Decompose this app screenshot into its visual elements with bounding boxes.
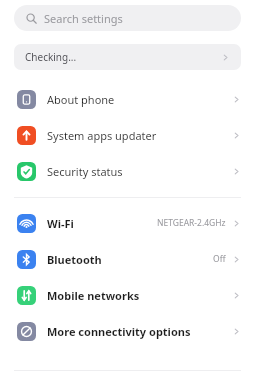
- staticText: More connectivity options: [47, 324, 191, 339]
- staticText: System apps updater: [47, 128, 157, 143]
- staticText: Bluetooth: [47, 252, 102, 267]
- staticText: About phone: [47, 92, 115, 107]
- staticText: Search settings: [44, 11, 123, 26]
- button[interactable]: Search settings: [14, 5, 241, 31]
- button[interactable]: Mobile networks: [0, 277, 255, 313]
- staticText: Mobile networks: [47, 288, 140, 303]
- button[interactable]: Wi-Fi: [0, 205, 255, 241]
- staticText: NETGEAR-2.4GHz: [157, 217, 226, 229]
- staticText: Wi-Fi: [47, 216, 74, 231]
- button[interactable]: Security status: [0, 153, 255, 189]
- staticText: Off: [213, 253, 226, 265]
- staticText: Checking...: [25, 50, 77, 64]
- button[interactable]: Bluetooth: [0, 241, 255, 277]
- button[interactable]: Checking...: [14, 44, 241, 70]
- button[interactable]: About phone: [0, 81, 255, 117]
- staticText: Security status: [47, 164, 123, 179]
- button[interactable]: More connectivity options: [0, 313, 255, 349]
- button[interactable]: System apps updater: [0, 117, 255, 153]
